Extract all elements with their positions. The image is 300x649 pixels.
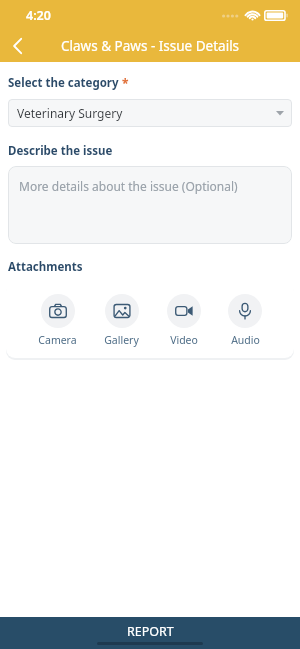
staticText: REPORT	[127, 623, 174, 640]
staticText: *	[122, 75, 129, 91]
staticText: Camera	[38, 333, 77, 347]
button[interactable]: Audio	[222, 290, 268, 351]
button[interactable]: More details about the issue (Optional)	[8, 166, 292, 244]
staticText: Video	[170, 333, 198, 347]
button[interactable]: Gallery	[98, 290, 145, 351]
staticText: Describe the issue	[8, 143, 113, 159]
button[interactable]: Camera	[32, 290, 83, 351]
button[interactable]: Veterinary Surgery	[8, 99, 292, 127]
button[interactable]: Back	[0, 30, 34, 62]
staticText: Attachments	[8, 259, 83, 275]
staticText: Claws & Paws - Issue Details	[61, 37, 240, 55]
button[interactable]: REPORT	[0, 617, 300, 649]
staticText: Select the category	[8, 75, 119, 91]
staticText: Veterinary Surgery	[17, 105, 123, 121]
staticText: Audio	[231, 333, 260, 347]
staticText: 4:20	[26, 7, 51, 24]
staticText: More details about the issue (Optional)	[19, 178, 238, 194]
button[interactable]: Video	[161, 290, 207, 351]
staticText: Gallery	[104, 333, 139, 347]
